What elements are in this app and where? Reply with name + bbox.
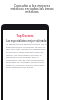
staticText: Consulta a los mejores médicos en todas … (8, 3, 56, 14)
staticText: tratamiento. Más de 3.000 profesionales (6, 59, 44, 62)
staticText: Top Doctors (16, 34, 34, 38)
staticText: La telemedicina te permite consultar con… (6, 43, 48, 46)
staticText: verificados en cardiología, dermatología… (6, 61, 45, 64)
staticText: en minutos y recibe atención médica de (6, 51, 44, 54)
staticText: especialistas más reconocidos del país s… (6, 46, 46, 49)
staticText: salir de tu casa. Agenda una videollamad… (6, 48, 46, 51)
staticText: calidad, con receta digital incluida y e… (6, 54, 42, 57)
staticText: seguimiento que necesitas para tu (6, 56, 39, 59)
staticText: están disponibles hoy mismo. (6, 66, 34, 69)
staticText: pediatría, nutrición y muchas otras área… (6, 64, 45, 67)
staticText: Los especialistas mejor valorados (6, 39, 48, 42)
